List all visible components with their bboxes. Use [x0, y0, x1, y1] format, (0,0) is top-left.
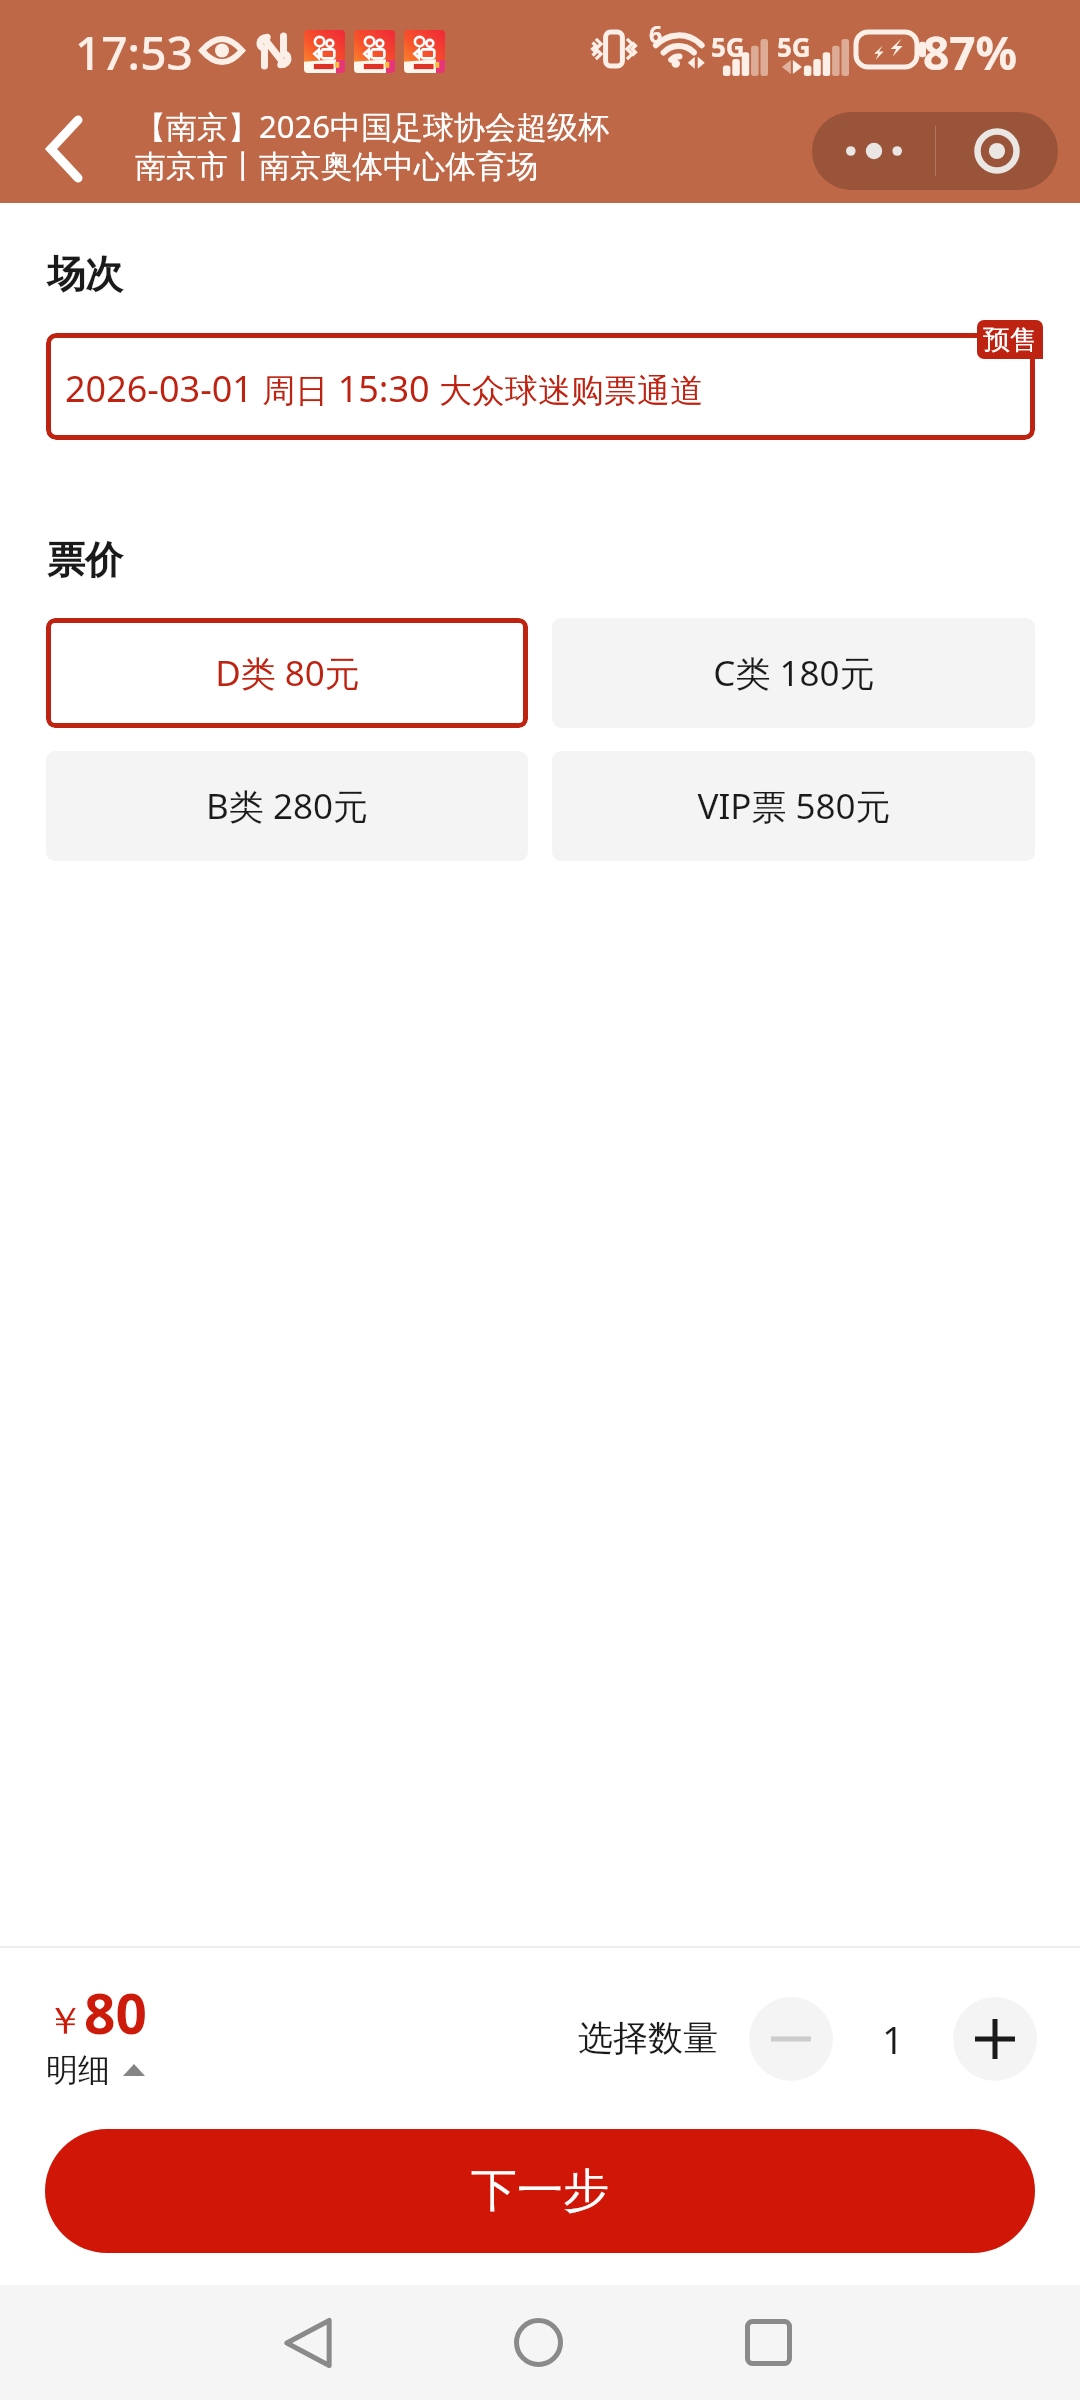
button[interactable]: 返回 [238, 2285, 378, 2400]
button[interactable]: 关闭 [936, 112, 1058, 190]
button[interactable]: 减少 [749, 1997, 833, 2081]
button[interactable]: 最近任务 [698, 2285, 838, 2400]
staticText: 1 [882, 2013, 904, 2065]
button[interactable]: 主屏幕 [468, 2285, 608, 2400]
button[interactable]: 明细 [46, 2050, 145, 2090]
button[interactable]: D类 80元 [46, 618, 528, 728]
staticText: D类 80元 [215, 649, 360, 697]
button[interactable]: B类 280元 [46, 751, 528, 861]
staticText: 明细 [46, 2050, 110, 2090]
staticText: 2026-03-01 周日 15:30 大众球迷购票通道 [65, 364, 704, 413]
staticText: VIP票 580元 [697, 782, 891, 830]
staticText: 6 [649, 18, 663, 49]
staticText: 5G [777, 29, 811, 64]
staticText: 下一步 [471, 2162, 609, 2220]
staticText: 87% [923, 21, 1018, 84]
staticText: 场次 [47, 250, 123, 298]
button[interactable]: VIP票 580元 [552, 751, 1035, 861]
staticText: 预售 [983, 323, 1037, 357]
staticText: 80 [84, 1975, 147, 2050]
staticText: 5G [711, 29, 745, 64]
staticText: 【南京】2026中国足球协会超级杯 [135, 105, 609, 147]
staticText: B类 280元 [206, 782, 368, 830]
button[interactable]: 2026-03-01 周日 15:30 大众球迷购票通道 [46, 333, 1035, 440]
staticText: 票价 [47, 536, 123, 584]
button[interactable]: 返回 [26, 111, 102, 187]
staticText: ￥ [46, 1997, 84, 2045]
button[interactable]: C类 180元 [552, 618, 1035, 728]
button[interactable]: 更多 [812, 112, 935, 190]
button[interactable]: 下一步 [45, 2129, 1035, 2253]
staticText: 17:53 [75, 21, 193, 84]
staticText: 南京市丨南京奥体中心体育场 [135, 147, 538, 186]
staticText: 选择数量 [578, 2016, 718, 2060]
button[interactable]: 增加 [953, 1997, 1037, 2081]
staticText: C类 180元 [713, 649, 875, 697]
